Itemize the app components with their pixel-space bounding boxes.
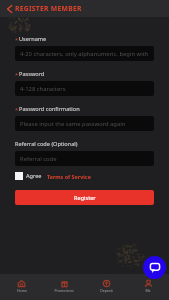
button[interactable]: Deposit: [85, 274, 127, 300]
button[interactable]: Promotions: [43, 274, 85, 300]
staticText: Agree: [26, 172, 42, 180]
button[interactable]: Referral code: [15, 151, 154, 166]
button[interactable]: Back: [0, 0, 169, 17]
staticText: Referral code (Optional): [15, 140, 78, 148]
staticText: Deposit: [100, 288, 113, 293]
staticText: REGISTER MEMBER: [15, 4, 82, 13]
staticText: Please input the same password again: [20, 120, 126, 128]
button[interactable]: 4-20 characters, only alphanumeric, begi…: [15, 46, 154, 61]
button[interactable]: Register: [15, 190, 154, 205]
button[interactable]: Please input the same password again: [15, 116, 154, 131]
staticText: Me: [145, 288, 151, 293]
staticText: Password: [19, 70, 45, 78]
staticText: *: [15, 71, 19, 78]
staticText: Terms of Service: [47, 173, 91, 180]
staticText: Home: [17, 288, 27, 293]
button[interactable]: Me: [127, 274, 169, 300]
staticText: Username: [19, 35, 47, 43]
other: Back: [7, 5, 12, 13]
staticText: Password confirmation: [19, 105, 80, 113]
staticText: Promotions: [54, 288, 74, 293]
staticText: *: [15, 106, 19, 113]
staticText: Referral code: [20, 155, 57, 163]
button[interactable]: Agree to terms checkbox: [15, 172, 91, 180]
staticText: Register: [74, 194, 96, 202]
button[interactable]: 4-128 characters: [15, 81, 154, 96]
staticText: 4-128 characters: [20, 85, 66, 93]
staticText: 4-20 characters, only alphanumeric, begi…: [20, 50, 149, 58]
staticText: *: [15, 36, 19, 43]
button[interactable]: Home: [0, 274, 43, 300]
button[interactable]: Chat support: [143, 256, 166, 279]
